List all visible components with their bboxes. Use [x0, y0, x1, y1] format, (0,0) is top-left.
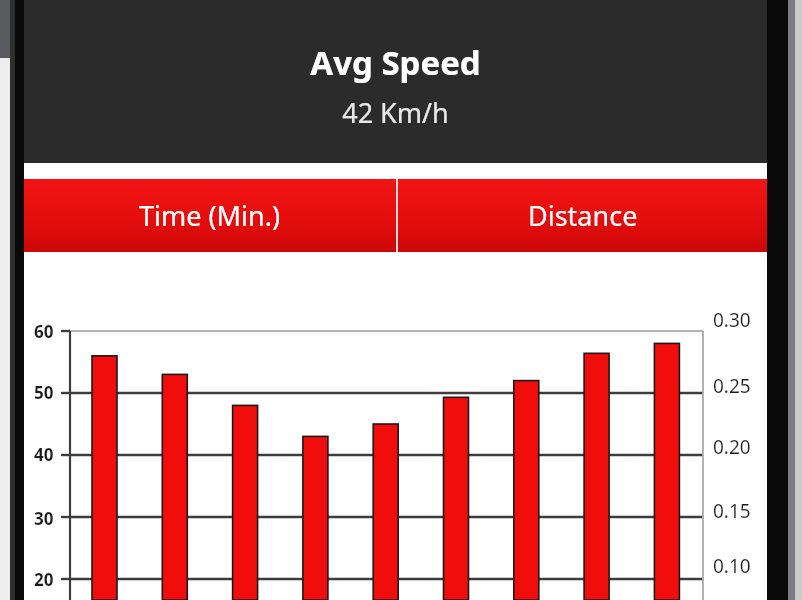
staticText: Avg Speed: [24, 40, 767, 85]
staticText: 0.20: [713, 434, 751, 460]
staticText: 0.15: [713, 498, 751, 524]
staticText: 20: [34, 568, 54, 591]
staticText: Distance: [528, 197, 638, 234]
staticText: 42 Km/h: [24, 94, 767, 131]
staticText: 30: [34, 507, 54, 530]
staticText: 40: [34, 443, 54, 466]
staticText: 0.10: [713, 553, 751, 579]
staticText: Time (Min.): [139, 197, 281, 234]
staticText: 0.25: [713, 373, 751, 399]
staticText: 0.30: [713, 307, 751, 333]
staticText: 60: [34, 320, 54, 343]
button[interactable]: Time (Min.): [24, 179, 396, 252]
button[interactable]: Distance: [398, 179, 767, 252]
staticText: 50: [34, 381, 54, 404]
